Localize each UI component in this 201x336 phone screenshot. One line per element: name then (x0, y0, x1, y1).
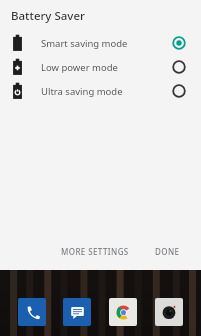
staticText: Low power mode (41, 61, 118, 74)
button[interactable]: Camera (155, 298, 183, 326)
button[interactable]: Chrome (109, 298, 137, 326)
button[interactable]: Phone (18, 298, 46, 326)
button[interactable]: Smart saving mode (0, 31, 201, 55)
staticText: MORE SETTINGS (61, 246, 129, 257)
staticText: DONE (155, 246, 180, 257)
button[interactable]: MORE SETTINGS (55, 243, 135, 260)
button[interactable]: Low power mode (0, 55, 201, 79)
staticText: Ultra saving mode (41, 85, 123, 98)
button[interactable]: Ultra saving mode (0, 79, 201, 103)
staticText: Smart saving mode (41, 37, 128, 50)
staticText: Battery Saver (11, 8, 85, 24)
button[interactable]: DONE (149, 243, 186, 260)
button[interactable]: Messages (63, 298, 91, 326)
